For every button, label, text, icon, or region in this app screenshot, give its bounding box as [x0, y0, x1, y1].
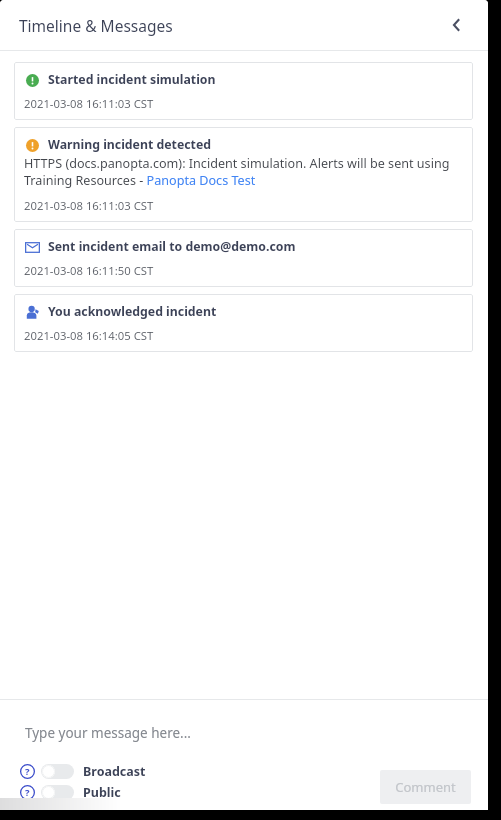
button[interactable] [41, 764, 74, 779]
button[interactable]: Help about Public [18, 783, 36, 801]
staticText: Sent incident email to demo@demo.com [48, 238, 296, 255]
button[interactable]: Comment [380, 770, 471, 804]
button[interactable]: Warning incident detected [14, 127, 473, 222]
button[interactable]: Help about Broadcast [18, 762, 36, 780]
button[interactable]: Collapse [440, 8, 474, 42]
staticText: 2021-03-08 16:11:50 CST [24, 263, 154, 278]
button[interactable]: Sent incident email to demo@demo.com [14, 229, 473, 287]
staticText: Timeline & Messages [19, 15, 173, 36]
staticText: Started incident simulation [48, 71, 216, 88]
button[interactable]: You acknowledged incident [14, 294, 473, 352]
staticText: Broadcast [83, 763, 146, 780]
button[interactable]: Started incident simulation [14, 62, 473, 120]
staticText: Public [83, 784, 121, 801]
button[interactable] [41, 785, 74, 800]
staticText: ? [25, 765, 30, 778]
staticText: Type your message here... [25, 724, 191, 742]
staticText: HTTPS (docs.panopta.com): Incident simul… [24, 155, 463, 189]
staticText: Comment [395, 778, 456, 796]
staticText: 2021-03-08 16:11:03 CST [24, 96, 154, 111]
staticText: 2021-03-08 16:11:03 CST [24, 198, 154, 213]
staticText: 2021-03-08 16:14:05 CST [24, 328, 154, 343]
staticText: You acknowledged incident [48, 303, 217, 320]
staticText: ? [25, 786, 30, 799]
staticText: Warning incident detected [48, 136, 212, 153]
